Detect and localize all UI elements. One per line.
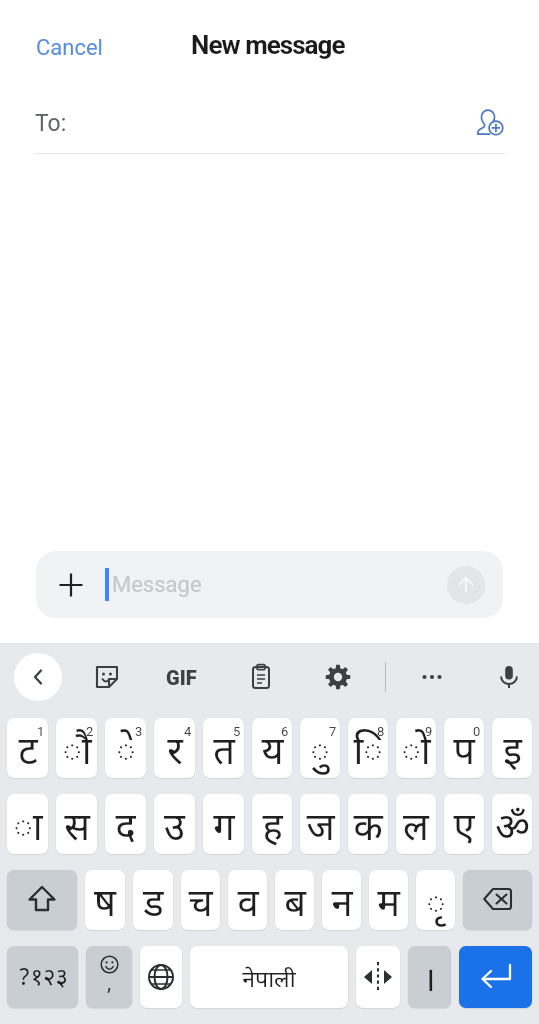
staticText: द [115,806,136,854]
button[interactable]: ि [348,718,388,778]
button[interactable]: ट [7,718,48,778]
button[interactable]: व [228,870,267,930]
staticText: ौ [62,730,92,778]
staticText: इ [503,730,522,778]
button[interactable]: ए [444,794,484,854]
button[interactable]: Add contact [466,98,514,146]
staticText: ल [403,806,429,854]
button[interactable]: ष [85,870,125,930]
staticText: ृ [426,882,446,930]
button[interactable]: ड [133,870,173,930]
staticText: म [377,882,400,930]
staticText: Cancel [36,35,103,61]
staticText: ॐ [495,806,530,854]
staticText: , [107,971,112,996]
staticText: 6 [281,724,289,739]
button[interactable]: ह [252,794,292,854]
button[interactable]: ु [300,718,340,778]
button[interactable]: प [444,718,484,778]
staticText: े [116,730,136,778]
staticText: 4 [184,724,192,739]
staticText: ज [306,806,335,854]
staticText: । [423,961,436,1005]
staticText: ह [262,806,283,854]
staticText: च [188,882,213,930]
button[interactable]: ग [203,794,244,854]
button[interactable]: GIF [158,654,204,700]
staticText: ए [453,806,475,854]
staticText: 3 [135,724,143,739]
button[interactable]: Change language [140,946,182,1008]
button[interactable]: Send [447,566,485,604]
staticText: य [261,730,284,778]
staticText: नेपाली [242,966,296,996]
button[interactable]: च [181,870,220,930]
button[interactable]: द [105,794,146,854]
button[interactable]: Clipboard [238,654,284,700]
staticText: व [237,882,259,930]
button[interactable]: More options [409,654,455,700]
button[interactable]: न [322,870,361,930]
staticText: र [167,730,183,778]
button[interactable]: ल [396,794,436,854]
button[interactable]: य [252,718,292,778]
staticText: प [453,730,475,778]
button[interactable]: क [348,794,388,854]
staticText: स [64,806,90,854]
staticText: उ [164,806,185,854]
staticText: To: [35,110,67,137]
staticText: 0 [473,724,481,739]
button[interactable]: इ [492,718,532,778]
staticText: ो [401,730,431,778]
button[interactable]: उ [154,794,195,854]
staticText: ा [13,806,43,854]
button[interactable]: Stickers [84,654,130,700]
staticText: ु [310,730,330,778]
button[interactable]: नेपाली [190,946,348,1008]
button[interactable]: Enter [459,946,532,1008]
button[interactable]: त [203,718,244,778]
button[interactable]: Shift [7,870,77,930]
button[interactable]: Emoji [86,946,132,1008]
button[interactable]: Attach [36,551,503,618]
staticText: 8 [377,724,385,739]
staticText: New message [191,30,345,60]
button[interactable]: Backspace [463,870,532,930]
staticText: ग [213,806,235,854]
staticText: त [213,730,235,778]
button[interactable]: ो [396,718,436,778]
staticText: क [353,806,383,854]
staticText: न [331,882,353,930]
staticText: ि [353,730,383,778]
staticText: ट [18,730,38,778]
button[interactable]: Back [14,653,62,701]
button[interactable]: म [369,870,408,930]
button[interactable]: Move cursor [356,946,400,1008]
button[interactable]: Attach [36,551,105,618]
staticText: GIF [166,666,197,689]
button[interactable]: े [105,718,146,778]
button[interactable]: । [408,946,451,1008]
button[interactable]: र [154,718,195,778]
button[interactable]: ौ [56,718,97,778]
staticText: 2 [86,724,94,739]
staticText: ड [143,882,164,930]
staticText: 5 [233,724,241,739]
button[interactable]: स [56,794,97,854]
staticText: ष [94,882,116,930]
staticText: 7 [329,724,337,739]
staticText: 9 [425,724,433,739]
staticText: Message [112,572,202,598]
button[interactable]: ृ [416,870,455,930]
staticText: ब [284,882,306,930]
button[interactable]: Voice input [486,654,532,700]
staticText: ?१२३ [18,963,68,994]
button[interactable]: ज [300,794,340,854]
button[interactable]: Settings [315,654,361,700]
staticText: 1 [37,724,45,739]
button[interactable]: ब [275,870,314,930]
button[interactable]: Cancel [22,25,117,71]
button[interactable]: ॐ [492,794,532,854]
button[interactable]: ?१२३ [7,946,78,1008]
button[interactable]: ा [7,794,48,854]
